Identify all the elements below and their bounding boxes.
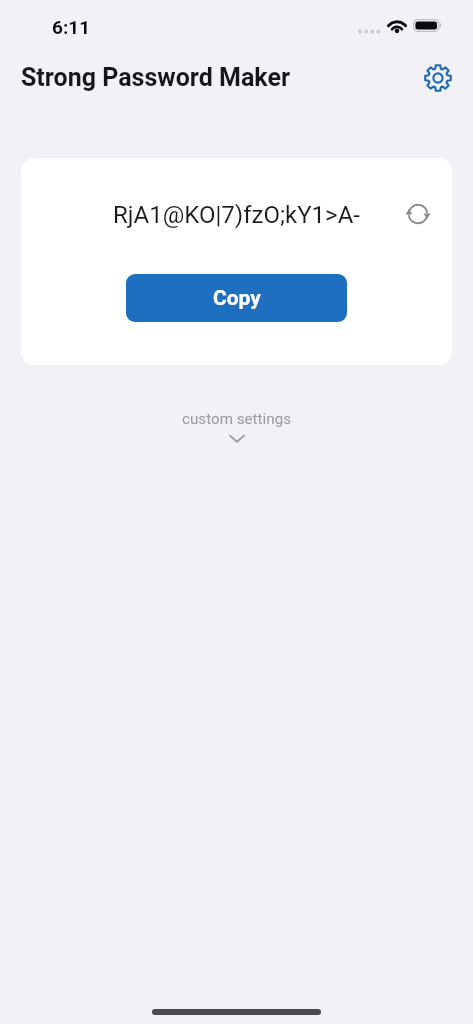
button[interactable]: Settings [418, 58, 458, 98]
staticText: 6:11 [52, 16, 91, 38]
staticText: Copy [213, 286, 261, 311]
staticText: Strong Password Maker [21, 63, 291, 92]
button[interactable]: Generate new password [399, 195, 437, 233]
staticText: custom settings [182, 410, 292, 428]
button[interactable]: Copy [126, 274, 347, 322]
button[interactable]: custom settings [0, 406, 473, 448]
staticText: RjA1@KO|7)fzO;kY1>A- [21, 201, 452, 229]
